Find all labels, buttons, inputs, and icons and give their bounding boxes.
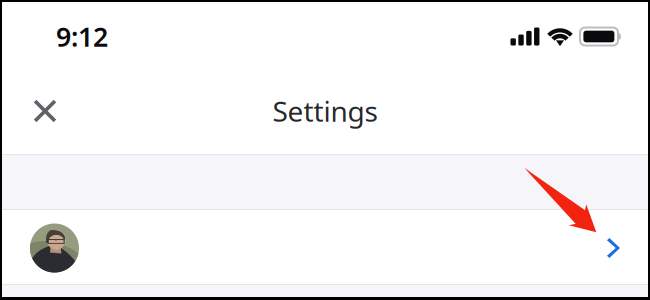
staticText: Settings	[272, 92, 377, 130]
button[interactable]	[2, 210, 648, 284]
button[interactable]: Close	[23, 89, 67, 133]
staticText: 9:12	[56, 19, 108, 54]
